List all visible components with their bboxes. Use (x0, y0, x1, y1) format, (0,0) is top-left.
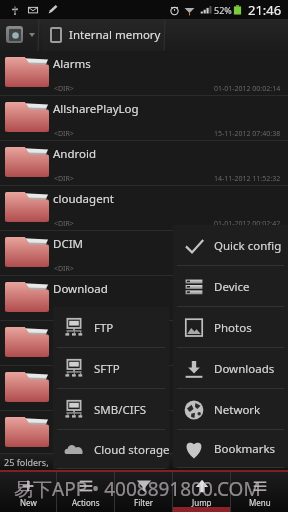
button[interactable]: Photos (173, 307, 288, 348)
button[interactable]: SMB/CIFS (53, 389, 169, 430)
staticText: Device (214, 279, 250, 295)
button[interactable]: DCIM (0, 231, 288, 276)
button[interactable]: Bookmarks (173, 430, 288, 468)
staticText: SFTP (94, 361, 120, 377)
staticText: SMB/CIFS (94, 402, 146, 418)
staticText: <DIR> (54, 399, 74, 409)
staticText: 15-11-2012 07:40:38 (214, 129, 281, 139)
staticText: <DIR> (54, 264, 74, 274)
staticText: Internal memory (69, 27, 161, 43)
button[interactable]: AllsharePlayLog (0, 96, 288, 141)
button[interactable]: Actions (57, 472, 114, 512)
staticText: 15-11-2012 08:10:22 (214, 264, 281, 274)
button[interactable]: New (0, 472, 56, 512)
button[interactable]: Music (0, 411, 288, 454)
button[interactable]: Menu (231, 472, 288, 512)
staticText: <DIR> (54, 219, 74, 229)
staticText: <DIR> (54, 309, 74, 319)
button[interactable]: Movies (0, 366, 288, 411)
button[interactable]: Cloud storage (53, 430, 169, 469)
staticText: Quick config (214, 238, 282, 254)
staticText: Cloud storage (94, 442, 169, 458)
button[interactable]: Network (173, 389, 288, 430)
staticText: Filter (134, 497, 153, 508)
staticText: Network (214, 402, 261, 418)
staticText: Alarms (53, 56, 91, 72)
staticText: Download (53, 281, 108, 297)
staticText: New (20, 497, 37, 508)
button[interactable]: Application menu (6, 26, 23, 43)
staticText: 易下APP • 4008891800.COM (14, 476, 261, 502)
staticText: Photos (214, 320, 252, 336)
button[interactable]: SFTP (53, 348, 169, 389)
staticText: FTP (94, 320, 114, 336)
staticText: <DIR> (54, 174, 74, 184)
button[interactable]: Downloads (173, 348, 288, 389)
staticText: Android (53, 146, 97, 162)
staticText: 25 folders, (4, 456, 49, 468)
staticText: external_sd (53, 326, 115, 342)
staticText: cloudagent (53, 191, 114, 207)
staticText: 21:46 (248, 1, 282, 19)
button[interactable]: Download (0, 276, 288, 321)
button[interactable]: Alarms (0, 51, 288, 96)
staticText: <DIR> (54, 129, 74, 139)
button[interactable]: FTP (53, 307, 169, 348)
staticText: Downloads (214, 361, 275, 377)
button[interactable]: Quick config (173, 225, 288, 266)
button[interactable]: Device (173, 266, 288, 307)
staticText: 01-01-2012 00:02:42 (214, 219, 281, 229)
staticText: DCIM (53, 236, 83, 252)
staticText: Actions (72, 497, 100, 508)
staticText: Menu (249, 497, 271, 508)
staticText: 52% (214, 4, 232, 16)
staticText: AllsharePlayLog (53, 101, 139, 117)
staticText: Jump (192, 497, 212, 508)
button[interactable]: Android (0, 141, 288, 186)
staticText: 01-01-2012 00:03:15 (214, 399, 281, 409)
staticText: 01-01-2012 00:03:19 (214, 444, 281, 454)
button[interactable]: cloudagent (0, 186, 288, 231)
staticText: 14-11-2012 11:52:32 (214, 174, 281, 184)
staticText: Movies (53, 371, 91, 387)
staticText: <DIR> (54, 354, 74, 364)
staticText: Music (53, 416, 85, 432)
staticText: 01-01-2012 00:02:14 (214, 84, 281, 94)
button[interactable]: Filter (115, 472, 172, 512)
button[interactable]: Show more (26, 19, 38, 51)
staticText: <DIR> (54, 84, 74, 94)
staticText: <DIR> (54, 444, 74, 454)
button[interactable]: Jump (173, 472, 230, 512)
button[interactable]: Internal memory (42, 19, 164, 51)
button[interactable]: external_sd (0, 321, 288, 366)
staticText: Bookmarks (214, 441, 276, 457)
